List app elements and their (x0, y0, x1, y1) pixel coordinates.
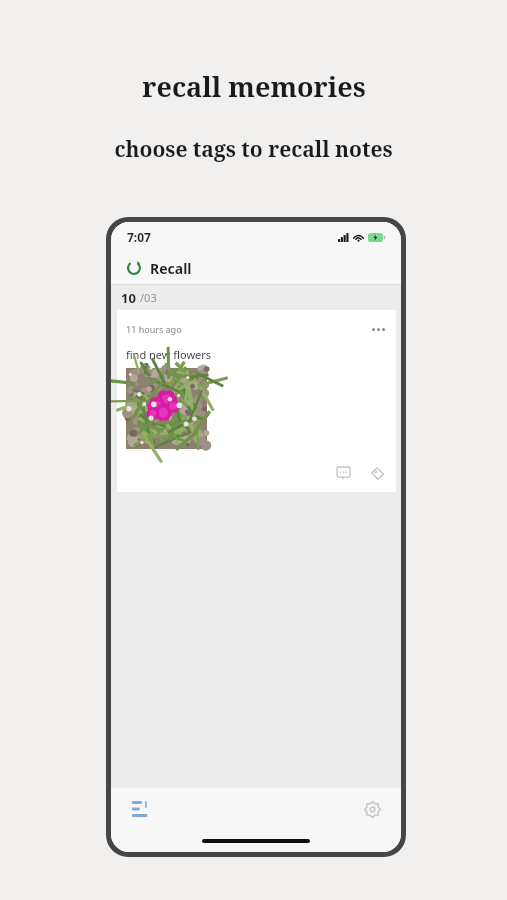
button[interactable]: Refresh (125, 259, 143, 277)
button[interactable]: Tag (367, 463, 387, 483)
button[interactable]: More options (369, 320, 387, 338)
staticText: recall memories (142, 68, 366, 105)
staticText: 10 (121, 289, 136, 307)
button[interactable]: Notes list (129, 798, 151, 820)
staticText: find new flowers (126, 347, 212, 362)
staticText: 7:07 (127, 229, 151, 245)
button[interactable]: Comment (333, 463, 353, 483)
staticText: choose tags to recall notes (114, 135, 393, 164)
staticText: Recall (150, 259, 192, 278)
staticText: 11 hours ago (126, 323, 182, 335)
button[interactable]: 11 hours ago (117, 310, 396, 492)
staticText: /03 (140, 290, 157, 305)
button[interactable]: Settings (361, 798, 383, 820)
